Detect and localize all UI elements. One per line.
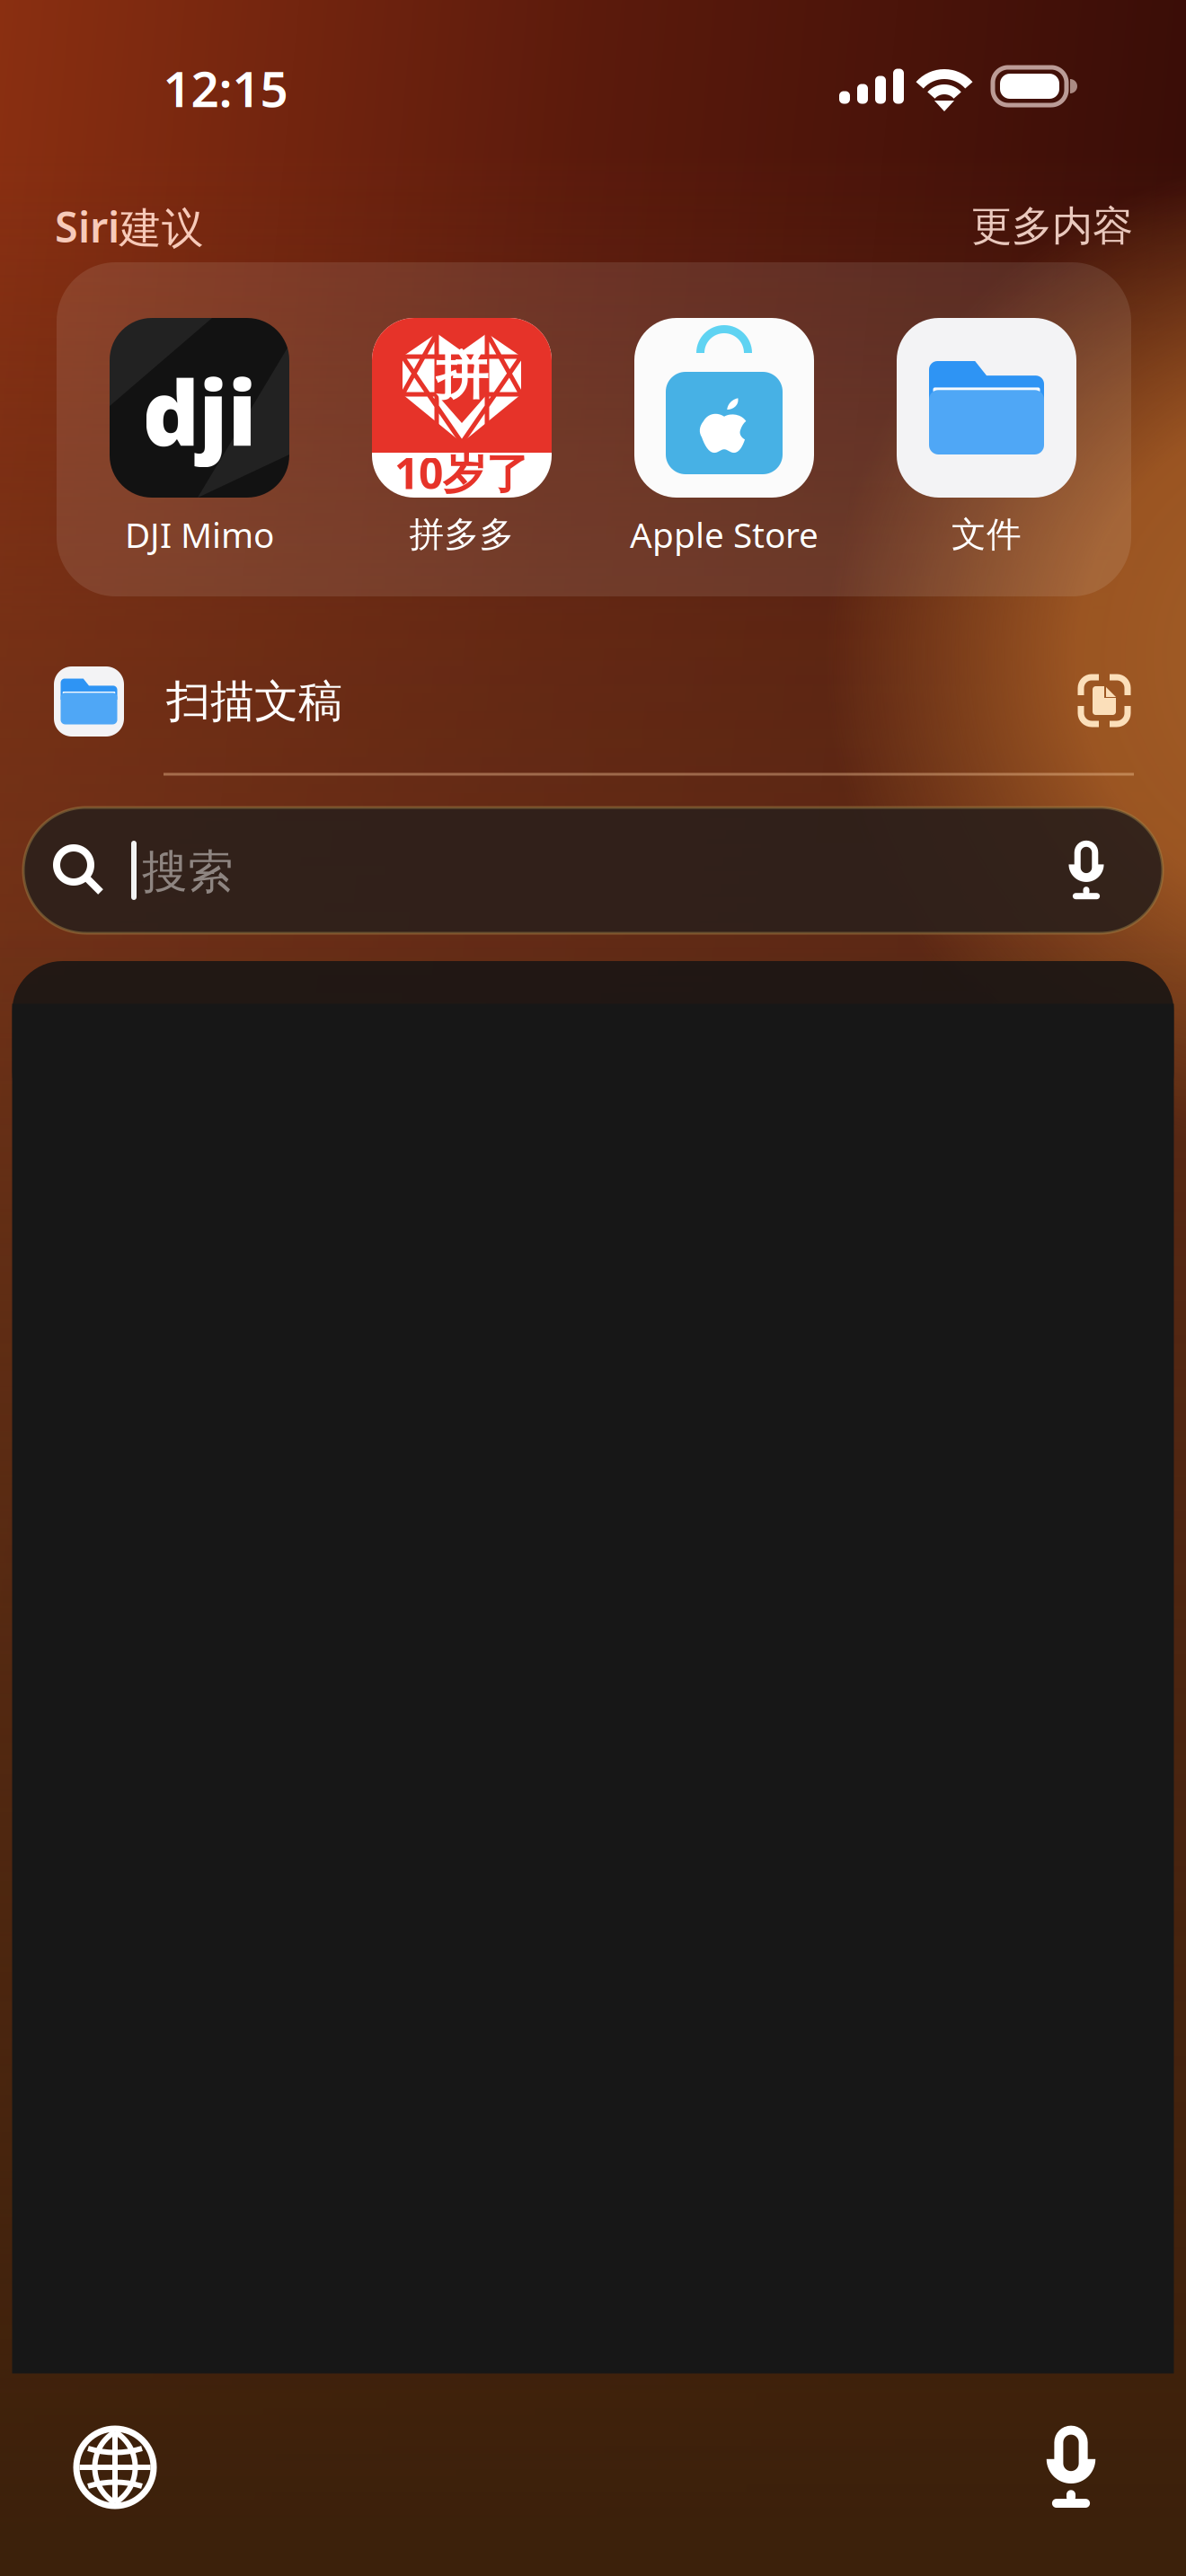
staticText: dji bbox=[142, 353, 257, 470]
button[interactable]: Dictation bbox=[1017, 2413, 1125, 2521]
staticText: 12:15 bbox=[163, 55, 288, 121]
staticText: 扫描文稿 bbox=[166, 674, 342, 729]
button[interactable]: Voice search bbox=[1045, 829, 1128, 912]
staticText: 拼多多 bbox=[409, 513, 514, 556]
button[interactable]: dji bbox=[74, 318, 325, 578]
staticText: Siri建议 bbox=[55, 198, 204, 254]
button[interactable]: 更多内容 bbox=[971, 201, 1133, 251]
button[interactable]: 拼 bbox=[336, 318, 588, 578]
button[interactable]: Switch keyboard bbox=[61, 2413, 169, 2521]
staticText: DJI Mimo bbox=[125, 511, 274, 557]
staticText: Apple Store bbox=[630, 511, 819, 557]
button[interactable]: 文件 bbox=[861, 318, 1112, 578]
button[interactable]: 扫描文稿 bbox=[54, 652, 952, 751]
staticText: 更多内容 bbox=[971, 201, 1133, 251]
button[interactable]: Apple Store bbox=[598, 318, 850, 578]
button[interactable]: Scan documents bbox=[1064, 660, 1145, 741]
staticText: 文件 bbox=[951, 513, 1022, 556]
staticText: 10岁了 bbox=[394, 444, 529, 501]
staticText: 拼 bbox=[435, 343, 488, 408]
staticText: 搜索 bbox=[142, 844, 234, 900]
